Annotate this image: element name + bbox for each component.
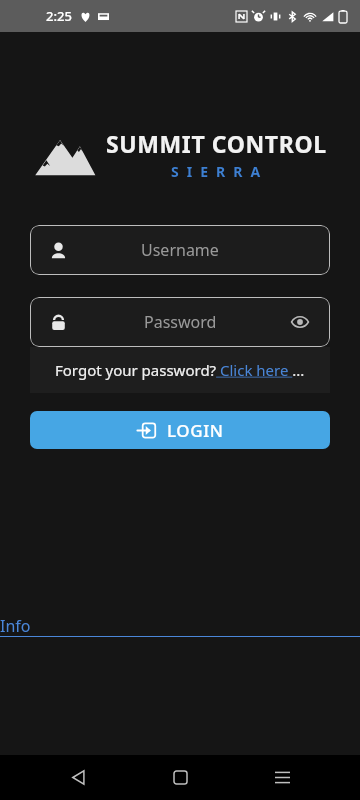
staticText: LOGIN (167, 419, 224, 442)
button[interactable]: Recent apps (258, 755, 306, 800)
staticText: S I E R R A (171, 162, 263, 181)
button[interactable]: Home (156, 755, 204, 800)
button[interactable]: Back (54, 755, 102, 800)
staticText: Username (141, 239, 219, 261)
button[interactable]: Password (30, 297, 330, 347)
button[interactable]: Forgot your password? Click here ... (30, 347, 330, 393)
button[interactable]: LOGIN (30, 411, 330, 449)
button[interactable]: Show password (288, 310, 312, 334)
staticText: Forgot your password? Click here ... (55, 360, 305, 380)
button[interactable]: Info (0, 615, 360, 637)
staticText: Info (0, 615, 31, 637)
staticText: 2:25 (46, 7, 72, 25)
staticText: SUMMIT CONTROL (106, 128, 327, 159)
button[interactable]: Username (30, 225, 330, 275)
staticText: Password (144, 311, 217, 333)
